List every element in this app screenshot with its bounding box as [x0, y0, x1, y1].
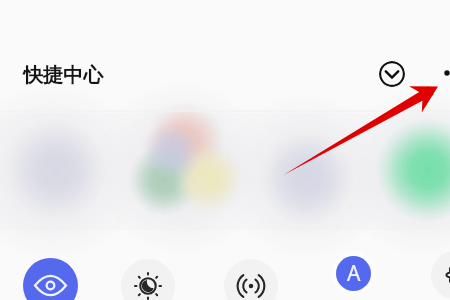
button[interactable]: More options: [432, 56, 450, 92]
button[interactable]: Expand: [379, 61, 405, 87]
staticText: 快捷中心: [23, 63, 103, 88]
button[interactable]: Settings: [431, 251, 450, 299]
button[interactable]: Font size: [332, 252, 375, 295]
button[interactable]: Eye comfort: [23, 258, 78, 300]
staticText: A: [347, 259, 361, 288]
button[interactable]: Personal hotspot: [224, 259, 278, 300]
button[interactable]: Dark mode: [121, 259, 175, 300]
